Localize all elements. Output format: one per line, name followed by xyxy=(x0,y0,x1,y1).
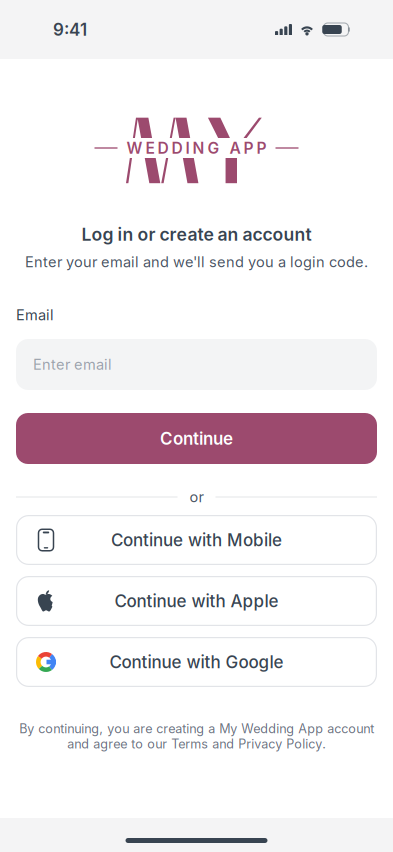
button[interactable]: Continue with Google xyxy=(16,637,377,687)
staticText: W E D D I N G A P P xyxy=(126,139,266,157)
staticText: Continue with Google xyxy=(109,652,283,672)
staticText: By continuing, you are creating a My Wed… xyxy=(19,721,374,751)
staticText: Enter email xyxy=(33,356,112,373)
button[interactable]: Continue with Apple xyxy=(16,576,377,626)
staticText: 9:41 xyxy=(53,19,87,40)
staticText: Continue with Apple xyxy=(114,591,278,611)
staticText: Email xyxy=(16,306,54,324)
button[interactable]: Continue with Mobile xyxy=(16,515,377,565)
staticText: Continue with Mobile xyxy=(111,530,282,550)
staticText: or xyxy=(189,488,203,506)
staticText: Enter your email and we'll send you a lo… xyxy=(25,253,368,271)
staticText: Continue xyxy=(160,428,233,449)
staticText: Log in or create an account xyxy=(81,224,311,245)
button[interactable]: Continue xyxy=(16,413,377,464)
